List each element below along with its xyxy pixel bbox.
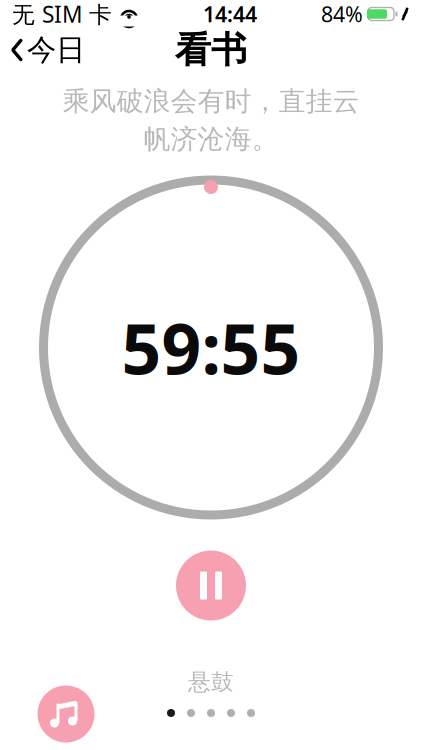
staticText: 84%	[321, 0, 363, 28]
button[interactable]: Pause	[173, 547, 249, 623]
staticText: 悬鼓	[188, 668, 234, 696]
staticText: 看书	[175, 28, 247, 72]
staticText: 无 SIM 卡	[12, 0, 112, 29]
button[interactable]: Music	[34, 682, 98, 746]
staticText: 59:55	[121, 301, 300, 394]
staticText: 今日	[27, 32, 85, 68]
button[interactable]: 今日	[0, 26, 95, 74]
staticText: 14:44	[203, 0, 257, 28]
staticText: 乘风破浪会有时，直挂云帆济沧海。	[62, 85, 359, 155]
